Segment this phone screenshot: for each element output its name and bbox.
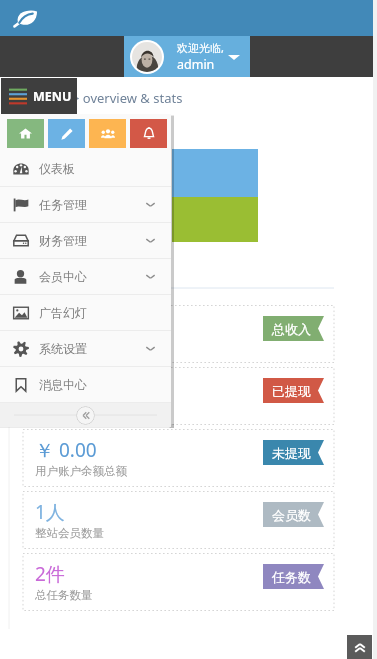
staticText: 2件: [35, 561, 65, 587]
button[interactable]: 会员中心: [0, 259, 171, 294]
staticText: 已提现金额总计: [35, 402, 116, 416]
button[interactable]: 系统设置: [0, 331, 171, 366]
button[interactable]: Edit: [48, 119, 85, 148]
staticText: 任务管理: [39, 197, 87, 212]
button[interactable]: 广告幻灯: [0, 295, 171, 330]
button[interactable]: 任务管理: [0, 187, 171, 222]
staticText: 总收入: [272, 321, 311, 337]
button[interactable]: 仪表板: [0, 151, 171, 186]
staticText: MENU: [33, 88, 72, 105]
staticText: 未提现: [272, 445, 311, 461]
staticText: 任务数: [272, 569, 311, 585]
button[interactable]: Notifications: [130, 119, 167, 148]
staticText: 广告幻灯: [39, 305, 87, 320]
staticText: 消息中心: [39, 377, 87, 392]
staticText: > overview & stats: [72, 89, 183, 107]
staticText: 用户账户余额总额: [35, 464, 127, 478]
staticText: 仪表板: [39, 161, 75, 176]
button[interactable]: 消息中心: [0, 367, 171, 402]
staticText: ￥ 0.00: [35, 437, 97, 463]
button[interactable]: Back to top: [347, 635, 372, 659]
staticText: admin: [177, 56, 215, 73]
staticText: ￥ 0.00: [35, 375, 97, 401]
staticText: ￥ 0.00: [35, 313, 97, 339]
button[interactable]: Users: [89, 119, 126, 148]
staticText: 会员中心: [39, 269, 87, 284]
staticText: 已提现: [272, 383, 311, 399]
staticText: 财务管理: [39, 233, 87, 248]
staticText: 系统设置: [39, 341, 87, 356]
button[interactable]: Collapse menu: [0, 403, 171, 427]
button[interactable]: MENU: [1, 78, 77, 114]
staticText: 1人: [35, 499, 65, 525]
staticText: 总收入金额总计: [35, 340, 116, 354]
staticText: 会员数: [272, 507, 311, 523]
button[interactable]: 欢迎光临,: [124, 36, 250, 77]
button[interactable]: Home: [7, 119, 44, 148]
staticText: 欢迎光临,: [177, 40, 224, 55]
staticText: 总任务数量: [35, 588, 93, 602]
button[interactable]: 财务管理: [0, 223, 171, 258]
staticText: 整站会员数量: [35, 526, 104, 540]
